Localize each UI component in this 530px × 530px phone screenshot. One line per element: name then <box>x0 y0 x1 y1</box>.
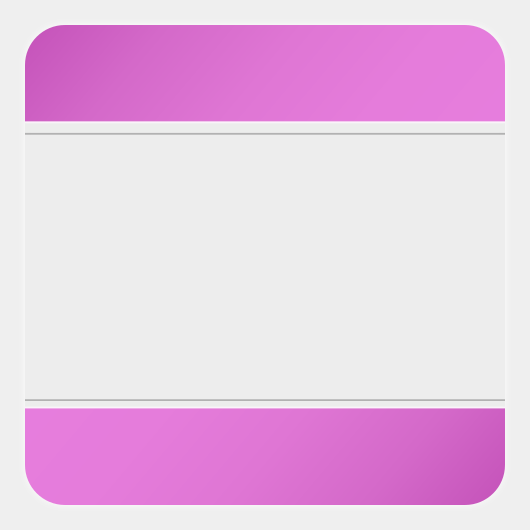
button[interactable]: Square label sticker <box>25 25 505 505</box>
